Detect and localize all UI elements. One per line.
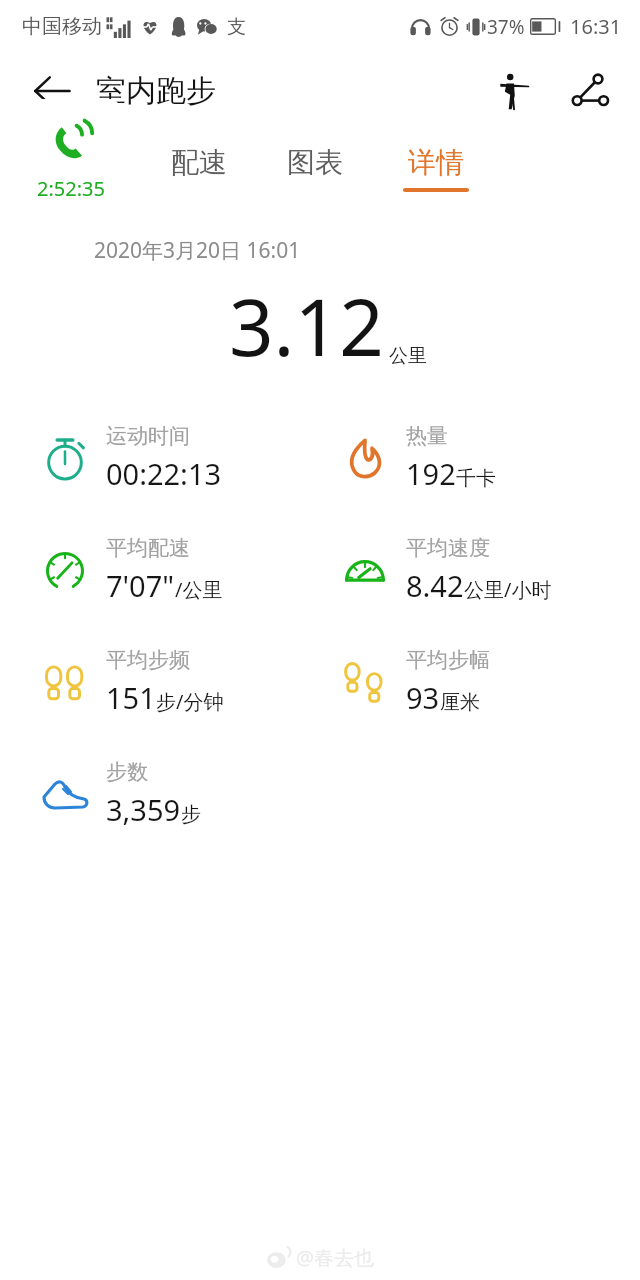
staticText: 千卡 <box>456 466 496 491</box>
button[interactable]: 详情 <box>397 145 475 192</box>
button[interactable]: 配速 <box>165 145 233 192</box>
staticText: 3.12 <box>229 273 384 379</box>
staticText: 00:22:13 <box>106 454 222 493</box>
button[interactable]: 平均步频 <box>38 647 224 717</box>
staticText: 7'07" <box>106 566 175 605</box>
button[interactable]: 平均步幅 <box>338 647 490 717</box>
button[interactable]: 热量 <box>338 423 496 493</box>
button[interactable]: 平均配速 <box>38 535 223 605</box>
staticText: 平均步幅 <box>406 647 490 673</box>
staticText: 192 <box>406 454 456 493</box>
staticText: 中国移动 <box>22 14 102 39</box>
button[interactable]: 图表 <box>281 145 349 192</box>
staticText: 2020年3月20日 16:01 <box>94 236 640 265</box>
staticText: @春去也 <box>296 1244 374 1271</box>
staticText: 步 <box>181 802 201 827</box>
staticText: 公里/小时 <box>464 576 552 603</box>
staticText: 详情 <box>408 145 464 180</box>
staticText: 图表 <box>287 145 343 180</box>
staticText: 37% <box>487 14 525 40</box>
staticText: 室内跑步 <box>96 72 216 110</box>
button[interactable]: 运动时间 <box>38 423 222 493</box>
staticText: 厘米 <box>440 690 480 715</box>
staticText: 运动时间 <box>106 423 190 449</box>
button[interactable]: Back <box>30 69 74 113</box>
staticText: 16:31 <box>570 13 622 40</box>
staticText: 支 <box>227 15 246 39</box>
staticText: 步数 <box>106 759 148 785</box>
button[interactable]: 步数 <box>38 759 201 829</box>
button[interactable]: Ongoing call 2:52:35 <box>21 99 120 221</box>
button[interactable]: Activity type <box>490 67 538 115</box>
staticText: 93 <box>406 678 440 717</box>
button[interactable]: 平均速度 <box>338 535 552 605</box>
staticText: 8.42 <box>406 566 464 605</box>
staticText: 平均配速 <box>106 535 190 561</box>
staticText: 热量 <box>406 423 448 449</box>
staticText: 3,359 <box>106 790 181 829</box>
staticText: 步/分钟 <box>156 688 224 715</box>
staticText: 2:52:35 <box>37 175 105 202</box>
staticText: /公里 <box>175 576 223 603</box>
staticText: 公里 <box>389 344 427 368</box>
button[interactable]: Share <box>566 67 614 115</box>
staticText: 平均步频 <box>106 647 190 673</box>
staticText: 配速 <box>171 145 227 180</box>
staticText: 151 <box>106 678 156 717</box>
staticText: 平均速度 <box>406 535 490 561</box>
